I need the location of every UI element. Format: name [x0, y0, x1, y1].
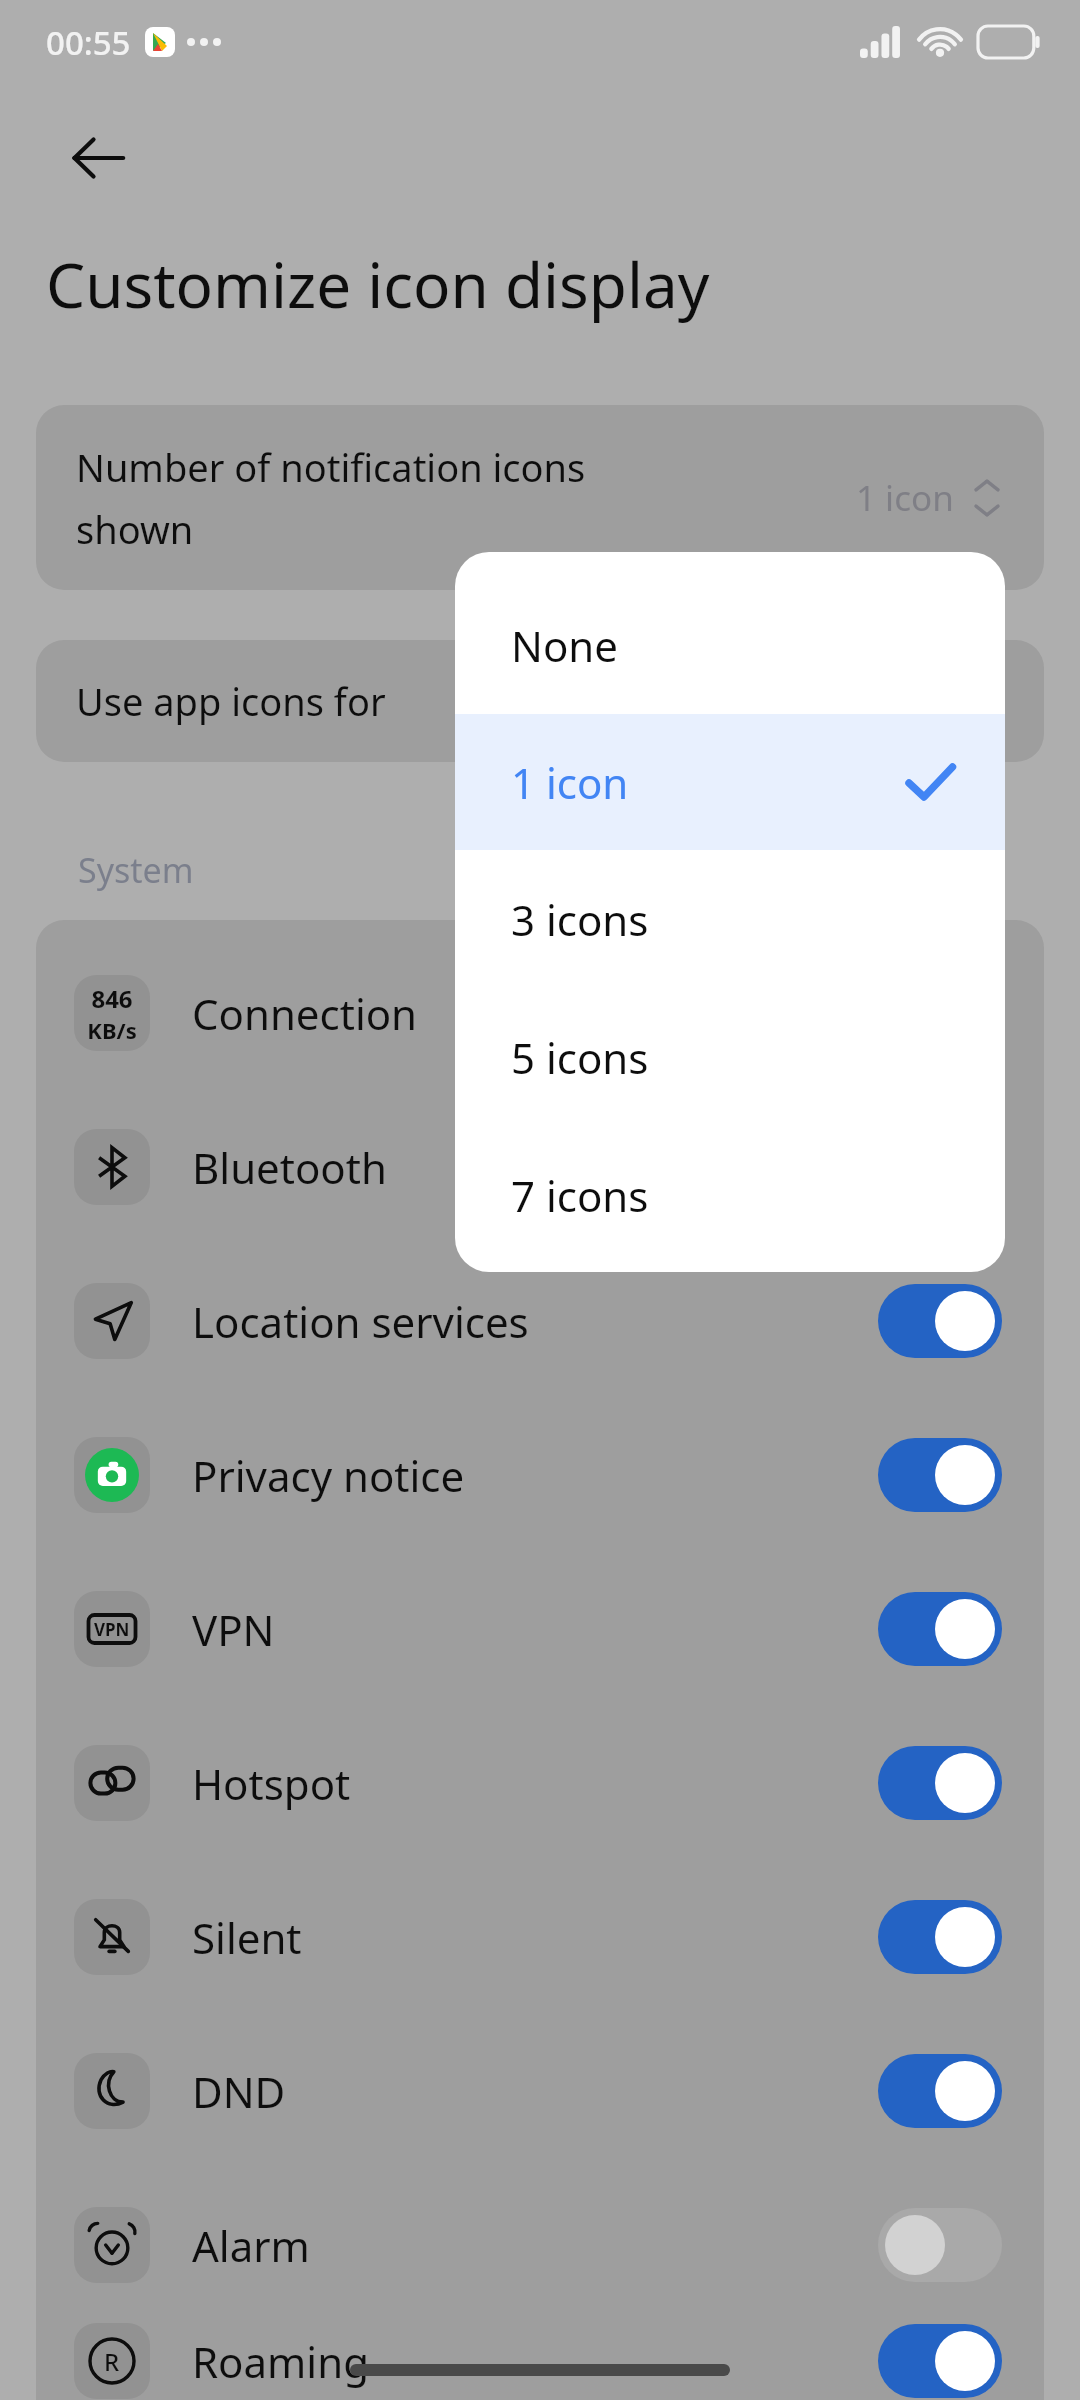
- staticText: Use app icons for: [76, 675, 386, 727]
- staticText: VPN: [192, 1601, 878, 1658]
- button[interactable]: VPN: [36, 1552, 1044, 1706]
- button[interactable]: Alarm: [36, 2168, 1044, 2322]
- button[interactable]: Location services: [36, 1244, 1044, 1398]
- button[interactable]: Bluetooth: [36, 1090, 1044, 1244]
- staticText: Number of notification icons shown: [76, 441, 856, 555]
- staticText: KB/s: [87, 1015, 137, 1045]
- staticText: None: [511, 617, 955, 674]
- staticText: Connection: [192, 985, 1002, 1042]
- staticText: Alarm: [192, 2217, 878, 2274]
- button[interactable]: 1 icon: [455, 714, 1005, 850]
- button[interactable]: Silent: [36, 1860, 1044, 2014]
- staticText: 5 icons: [511, 1029, 955, 1086]
- staticText: 1 icon: [511, 754, 905, 811]
- button[interactable]: On: [878, 1592, 1002, 1666]
- staticText: Silent: [192, 1909, 878, 1966]
- button[interactable]: 5 icons: [455, 988, 1005, 1126]
- button[interactable]: DND: [36, 2014, 1044, 2168]
- button[interactable]: Back: [50, 110, 146, 206]
- staticText: 7 icons: [511, 1167, 955, 1224]
- staticText: Customize icon display: [46, 242, 710, 326]
- button[interactable]: Hotspot: [36, 1706, 1044, 1860]
- staticText: Roaming: [192, 2333, 878, 2390]
- button[interactable]: R: [36, 2322, 1044, 2400]
- button[interactable]: Use app icons for: [36, 640, 1044, 762]
- button[interactable]: Off: [878, 2208, 1002, 2282]
- staticText: 846: [91, 982, 133, 1015]
- button[interactable]: 846: [36, 936, 1044, 1090]
- staticText: System: [78, 847, 194, 893]
- button[interactable]: 3 icons: [455, 850, 1005, 988]
- button[interactable]: On: [878, 2054, 1002, 2128]
- staticText: 3 icons: [511, 891, 955, 948]
- button[interactable]: On: [878, 1438, 1002, 1512]
- button[interactable]: On: [878, 1284, 1002, 1358]
- button[interactable]: Privacy notice: [36, 1398, 1044, 1552]
- staticText: Bluetooth: [192, 1139, 1002, 1196]
- staticText: VPN: [94, 1618, 130, 1641]
- button[interactable]: None: [455, 576, 1005, 714]
- button[interactable]: 7 icons: [455, 1126, 1005, 1264]
- staticText: DND: [192, 2063, 878, 2120]
- staticText: Privacy notice: [192, 1447, 878, 1504]
- button[interactable]: On: [878, 1900, 1002, 1974]
- staticText: Hotspot: [192, 1755, 878, 1812]
- staticText: 00:55: [46, 20, 131, 65]
- button[interactable]: On: [878, 2324, 1002, 2398]
- button[interactable]: Number of notification icons shown: [36, 405, 1044, 590]
- staticText: Location services: [192, 1293, 878, 1350]
- button[interactable]: On: [878, 1746, 1002, 1820]
- staticText: R: [104, 2345, 120, 2378]
- staticText: 1 icon: [856, 474, 954, 522]
